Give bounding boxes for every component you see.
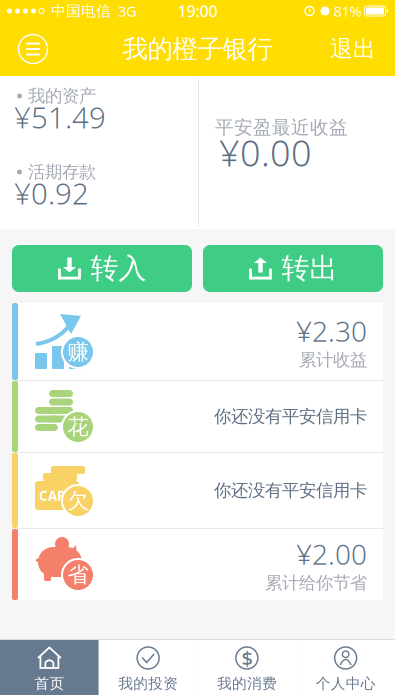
button[interactable]: 花 [12,381,383,452]
staticText: 我的投资 [118,674,178,692]
button[interactable]: CARD [12,453,383,528]
staticText: 首页 [34,674,64,692]
staticText: 你还没有平安信用卡 [214,406,367,427]
staticText: 81% [333,1,361,21]
staticText: 3G [118,1,137,21]
staticText: ¥2.00 [296,535,367,572]
staticText: 我的资产 [28,85,96,107]
staticText: 累计给你节省 [265,572,367,594]
button[interactable]: 赚 [12,303,383,380]
button[interactable]: 个人中心 [296,639,395,695]
staticText: 个人中心 [316,674,376,692]
button[interactable]: 退出 [322,27,384,71]
staticText: 退出 [330,35,376,63]
staticText: 转入 [90,251,146,286]
button[interactable]: 省 [12,529,383,600]
staticText: CARD [39,487,76,504]
staticText: 赚 [67,339,88,365]
staticText: 我的橙子银行 [122,33,272,64]
staticText: 花 [67,414,88,440]
staticText: 中国电信 [51,2,111,20]
button[interactable]: $ [197,639,296,695]
staticText: ¥0.00 [219,129,312,176]
staticText: ¥51.49 [14,97,106,136]
staticText: 欠 [67,488,88,514]
staticText: 我的消费 [217,674,277,692]
button[interactable]: 首页 [0,639,99,695]
button[interactable]: 转出 [203,245,383,292]
staticText: ¥0.92 [14,173,89,212]
staticText: 你还没有平安信用卡 [214,480,367,501]
staticText: 平安盈最近收益 [215,116,348,139]
staticText: $ [241,645,252,671]
staticText: ¥2.30 [296,312,367,349]
button[interactable]: 我的投资 [99,639,198,695]
button[interactable]: 菜单 [11,27,55,71]
button[interactable]: 转入 [12,245,192,292]
staticText: 省 [67,562,88,588]
staticText: 活期存款 [28,161,96,183]
staticText: 转出 [281,251,337,286]
staticText: 累计收益 [299,349,367,371]
staticText: 19:00 [177,0,217,22]
